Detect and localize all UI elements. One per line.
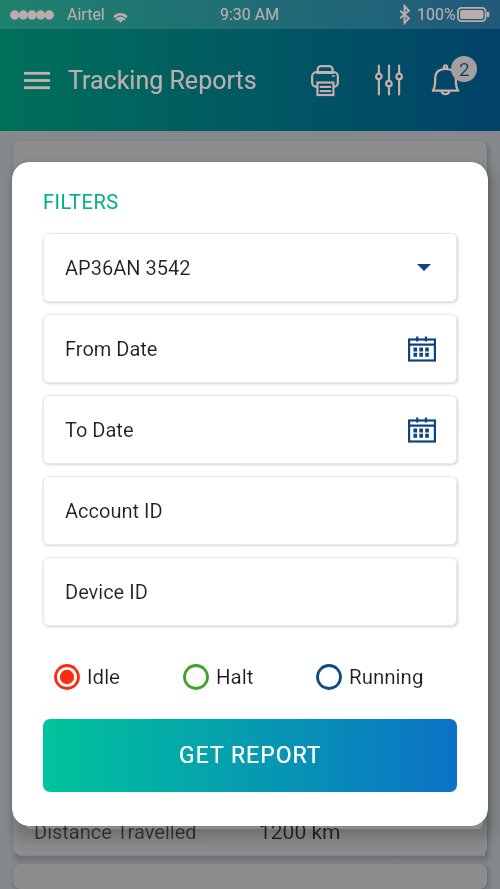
staticText: Halt (216, 665, 254, 689)
button[interactable]: Menu (12, 55, 62, 105)
button[interactable]: GET REPORT (43, 719, 457, 792)
button[interactable]: Running (316, 664, 424, 690)
button[interactable]: Account ID (43, 476, 457, 545)
button[interactable]: Halt (183, 664, 254, 690)
staticText: Device ID (65, 580, 148, 603)
button[interactable]: Idle (54, 664, 120, 690)
staticText: 2 (459, 58, 470, 80)
staticText: From Date (65, 337, 158, 360)
staticText: GET REPORT (179, 742, 322, 769)
button[interactable]: Filter settings (365, 56, 413, 104)
staticText: 100% (417, 5, 456, 24)
staticText: Account ID (65, 499, 163, 522)
staticText: Tracking Reports (68, 66, 257, 95)
staticText: Running (349, 665, 424, 689)
button[interactable]: From Date (43, 314, 457, 383)
staticText: Airtel (67, 5, 105, 24)
button[interactable]: Print (301, 56, 349, 104)
staticText: Idle (87, 665, 120, 689)
staticText: 1200 km (259, 820, 341, 845)
staticText: AP36AN 3542 (65, 256, 191, 279)
button[interactable]: AP36AN 3542 (43, 233, 457, 302)
staticText: To Date (65, 418, 134, 441)
staticText: 9:30 AM (220, 5, 280, 24)
staticText: FILTERS (43, 190, 119, 213)
staticText: Distance Travelled (34, 820, 197, 843)
button[interactable]: Notifications (427, 56, 477, 104)
button[interactable]: To Date (43, 395, 457, 464)
button[interactable]: Device ID (43, 557, 457, 626)
